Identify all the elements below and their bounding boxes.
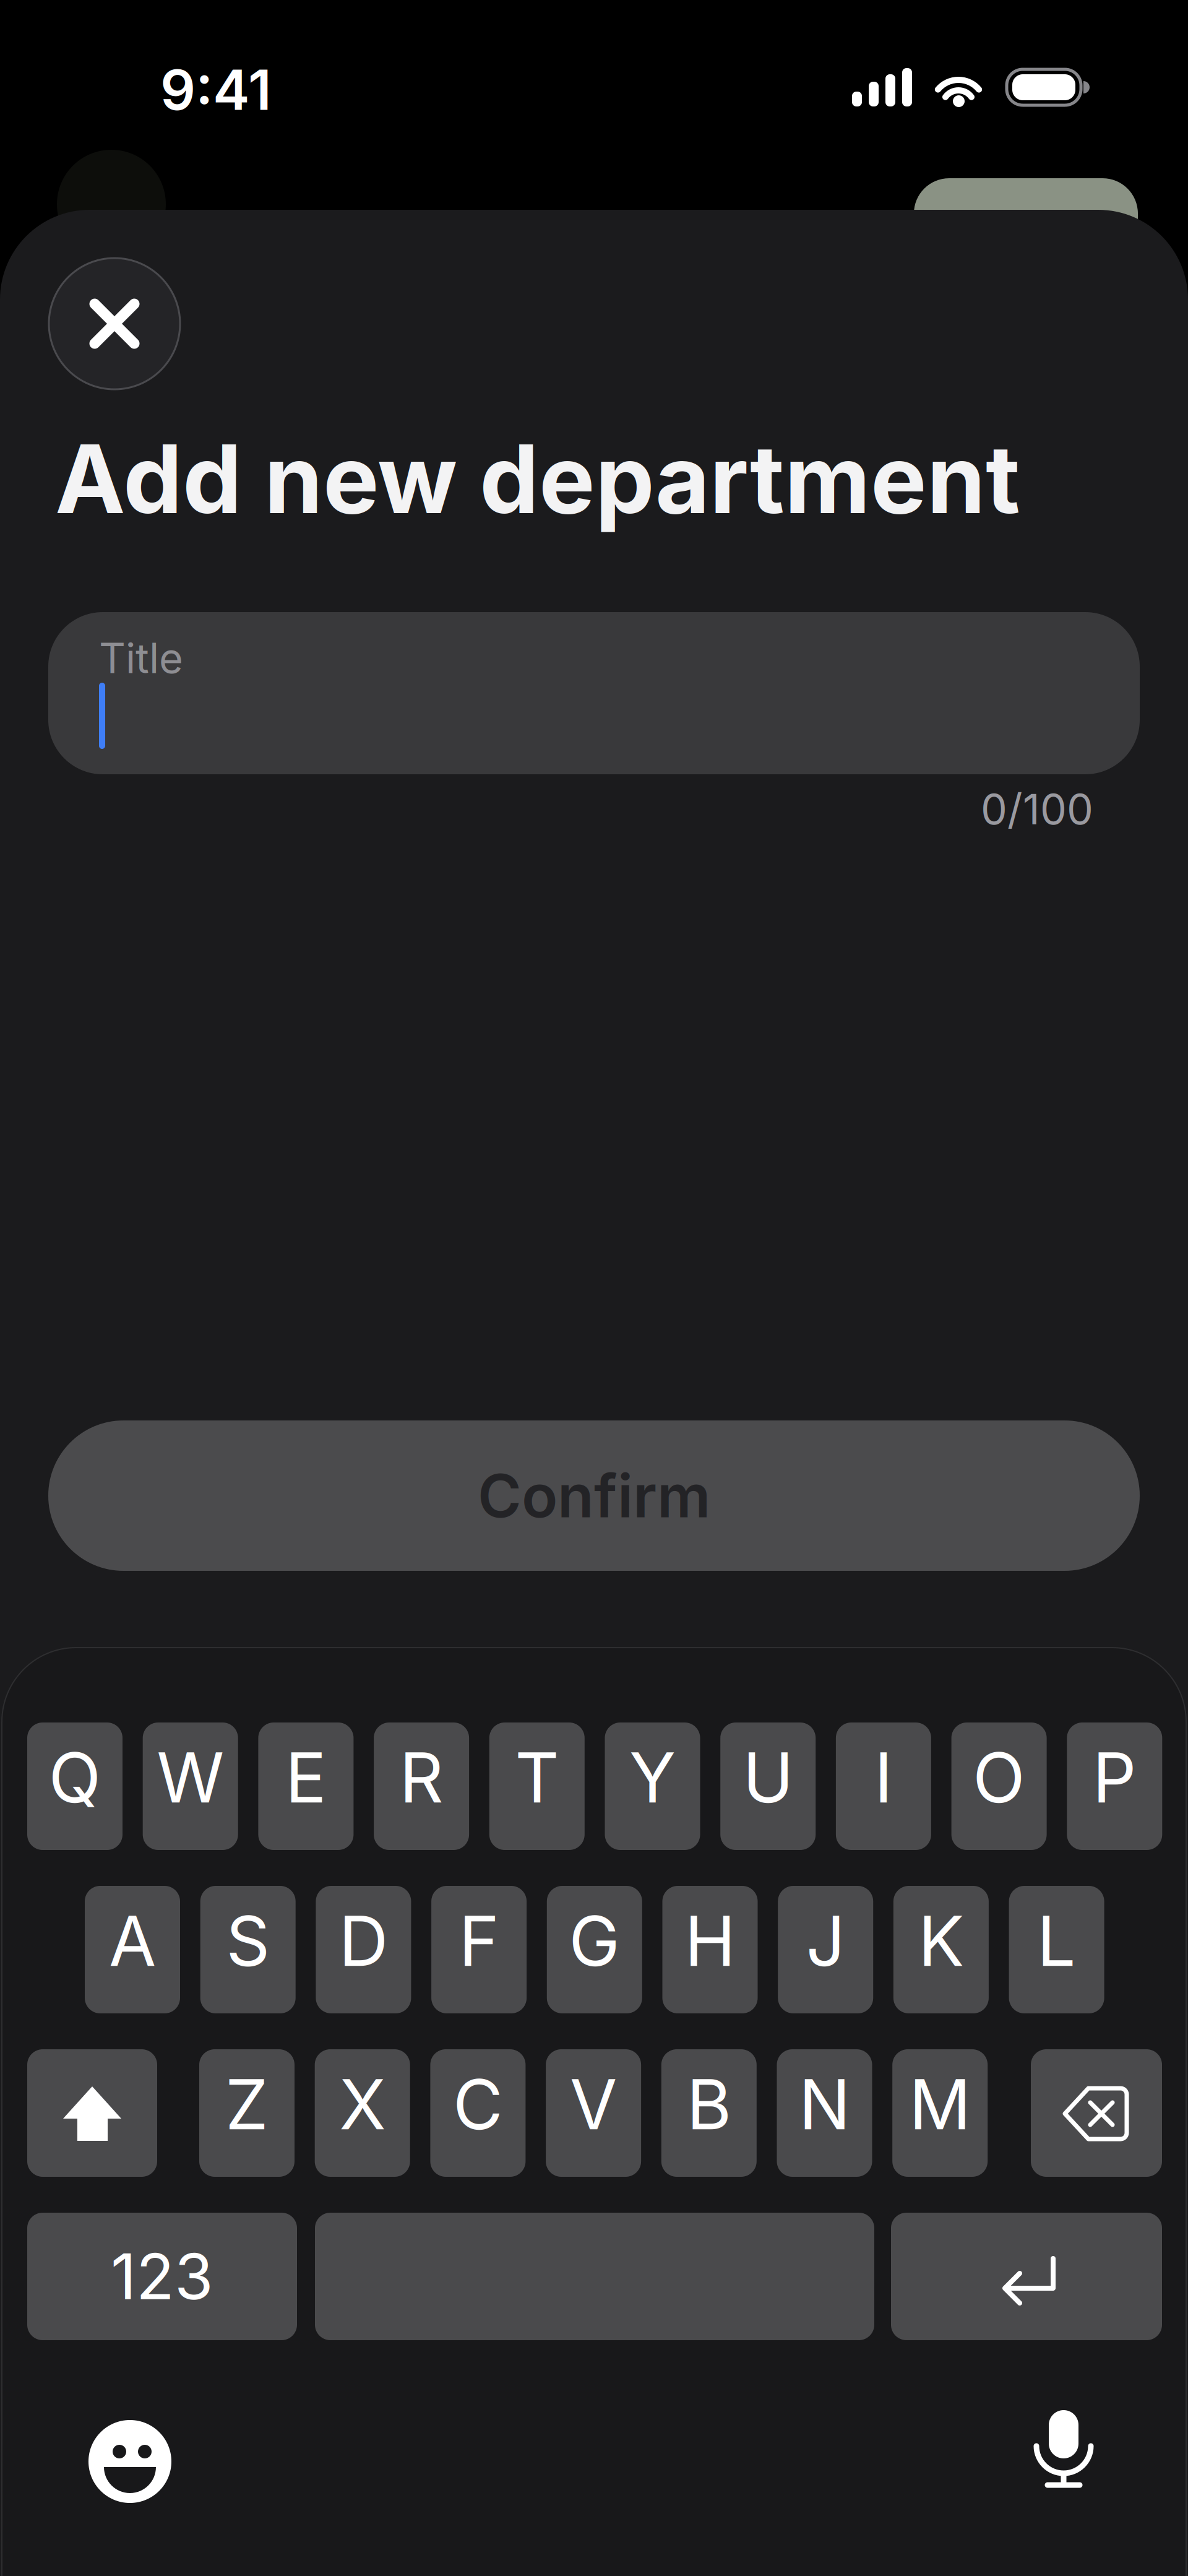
- staticText: Y: [629, 1737, 676, 1818]
- staticText: D: [339, 1901, 388, 1981]
- staticText: P: [1093, 1737, 1137, 1818]
- staticText: F: [459, 1901, 499, 1981]
- staticText: Q: [49, 1737, 101, 1818]
- staticText: K: [918, 1901, 964, 1981]
- staticText: T: [515, 1737, 559, 1818]
- staticText: X: [339, 2064, 386, 2145]
- staticText: U: [743, 1737, 793, 1818]
- staticText: L: [1037, 1901, 1076, 1981]
- staticText: B: [687, 2064, 731, 2145]
- staticText: S: [226, 1901, 270, 1981]
- staticText: E: [285, 1737, 327, 1818]
- staticText: I: [874, 1737, 893, 1818]
- staticText: Add new department: [55, 423, 1020, 534]
- staticText: A: [109, 1901, 156, 1981]
- staticText: 0/100: [981, 784, 1093, 834]
- staticText: R: [399, 1737, 443, 1818]
- staticText: G: [569, 1901, 620, 1981]
- staticText: Confirm: [478, 1461, 710, 1531]
- staticText: Z: [225, 2064, 269, 2145]
- staticText: Title: [99, 634, 183, 682]
- staticText: N: [799, 2064, 850, 2145]
- staticText: O: [973, 1737, 1025, 1818]
- staticText: 123: [111, 2239, 213, 2313]
- staticText: M: [909, 2064, 971, 2145]
- staticText: H: [685, 1901, 735, 1981]
- staticText: V: [570, 2064, 617, 2145]
- staticText: 9:41: [160, 57, 272, 122]
- staticText: W: [157, 1737, 224, 1818]
- staticText: C: [453, 2064, 503, 2145]
- staticText: J: [806, 1901, 845, 1981]
